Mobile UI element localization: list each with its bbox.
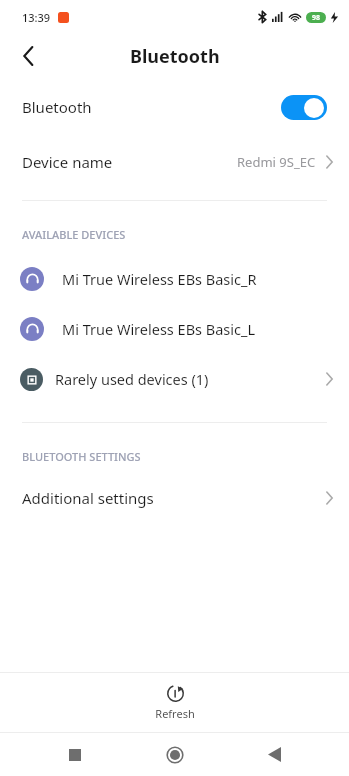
button[interactable]: Device name: [0, 136, 349, 188]
staticText: Bluetooth: [22, 97, 92, 117]
button[interactable]: Home: [151, 733, 199, 776]
staticText: 98: [312, 13, 321, 23]
button[interactable]: Back: [250, 733, 298, 776]
staticText: Additional settings: [22, 488, 154, 508]
staticText: Rarely used devices (1): [55, 369, 209, 389]
button[interactable]: Bluetooth: [0, 78, 349, 136]
staticText: 13:39: [22, 10, 51, 25]
staticText: AVAILABLE DEVICES: [22, 227, 126, 242]
staticText: BLUETOOTH SETTINGS: [22, 449, 141, 464]
staticText: Mi True Wireless EBs Basic_L: [62, 319, 256, 339]
staticText: Device name: [22, 152, 113, 172]
button[interactable]: Additional settings: [0, 476, 349, 520]
button[interactable]: Mi True Wireless EBs Basic_R: [0, 254, 349, 304]
staticText: Bluetooth: [130, 44, 220, 69]
button[interactable]: Back: [8, 36, 48, 76]
staticText: Redmi 9S_EC: [237, 153, 316, 171]
button[interactable]: Mi True Wireless EBs Basic_L: [0, 304, 349, 354]
staticText: Mi True Wireless EBs Basic_R: [62, 269, 257, 289]
button[interactable]: Refresh: [127, 679, 223, 727]
button[interactable]: Rarely used devices (1): [0, 354, 349, 404]
staticText: Refresh: [155, 706, 195, 721]
button[interactable]: Recents: [51, 733, 99, 776]
